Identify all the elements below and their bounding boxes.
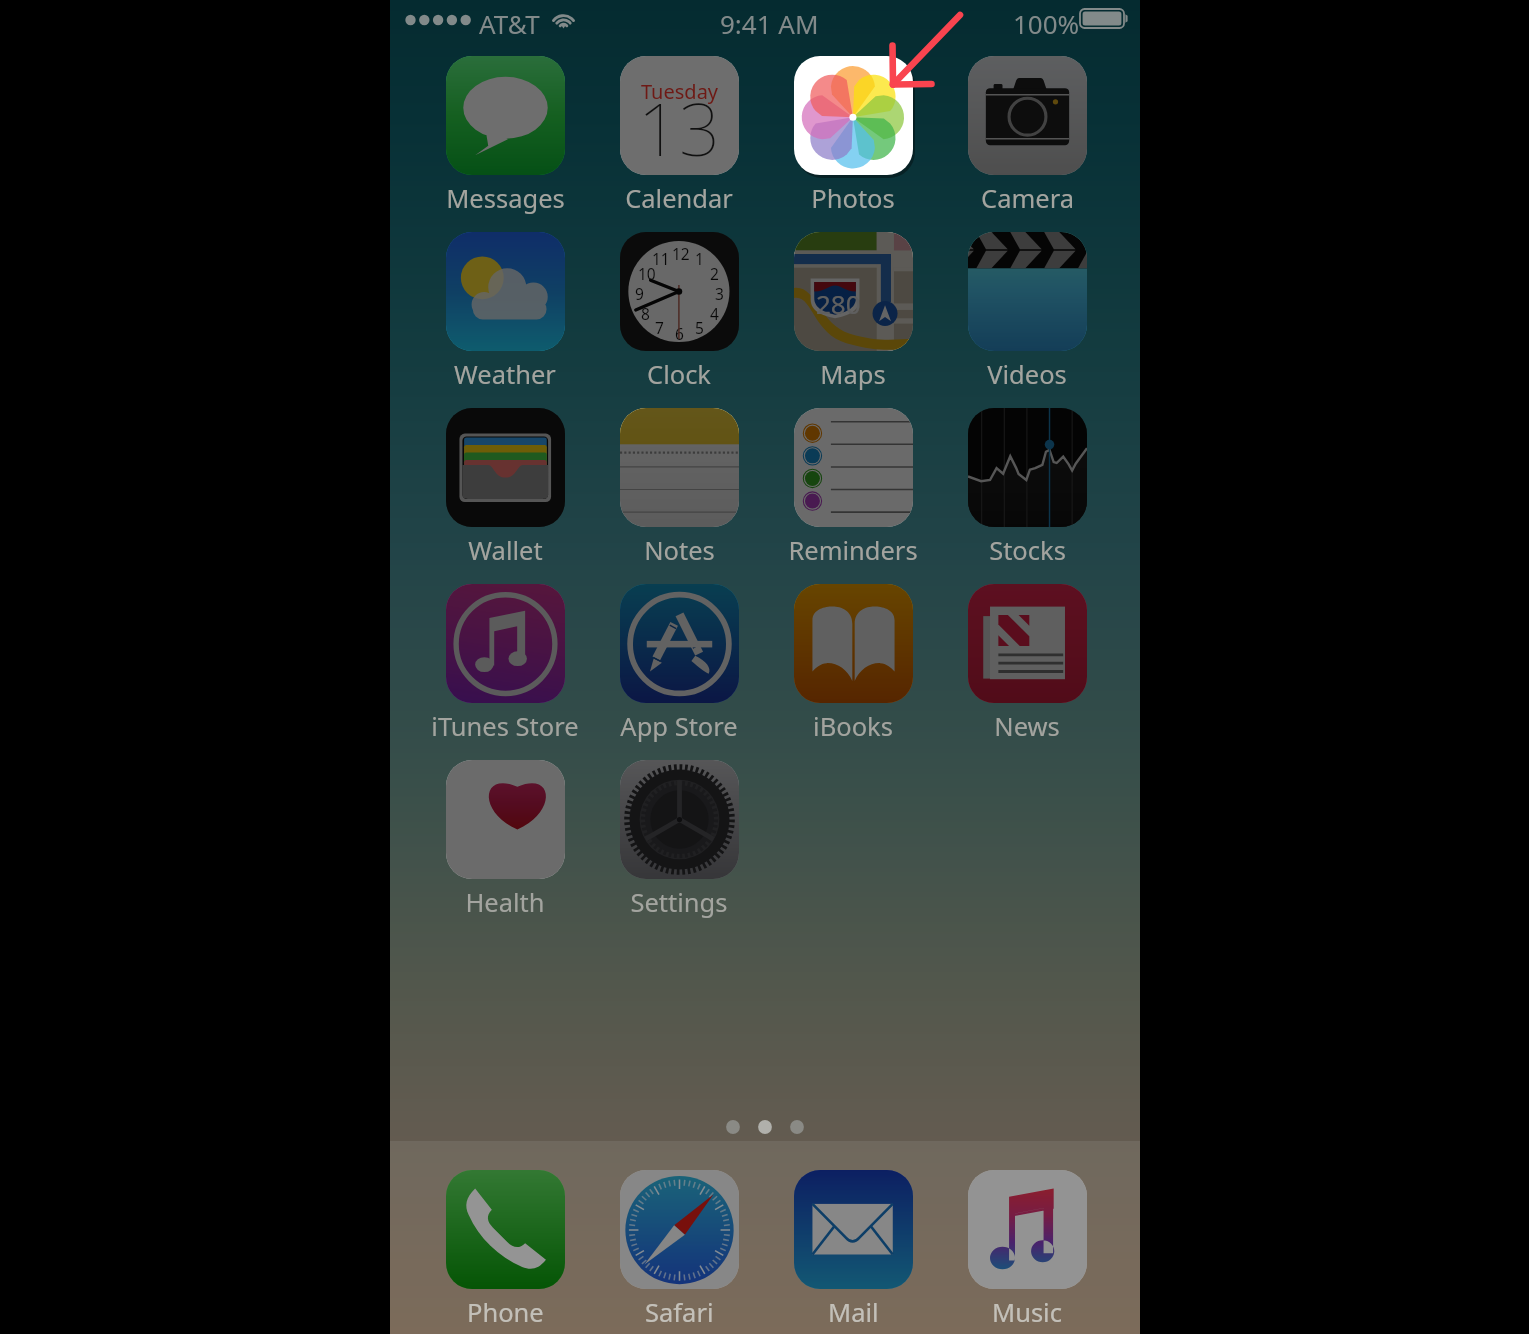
button[interactable]: Health (418, 760, 592, 920)
staticText: Settings (630, 885, 728, 920)
staticText: 8 (641, 303, 650, 324)
button[interactable]: iTunes Store (418, 584, 592, 744)
staticText: 7 (655, 317, 664, 338)
staticText: Camera (981, 181, 1074, 216)
staticText: 5 (695, 317, 704, 338)
button[interactable]: Safari (592, 1170, 766, 1330)
staticText: 9:41 AM (720, 6, 819, 41)
staticText: 10 (638, 263, 656, 284)
button[interactable]: Weather (418, 232, 592, 392)
button[interactable]: Settings (592, 760, 766, 920)
staticText: Notes (644, 533, 715, 568)
button[interactable]: Mail (766, 1170, 940, 1330)
staticText: Tuesday (641, 78, 719, 105)
button[interactable]: Tuesday (592, 56, 766, 216)
staticText: AT&T (479, 6, 540, 41)
staticText: Safari (645, 1295, 714, 1330)
staticText: 6 (675, 323, 684, 344)
button[interactable]: 1 (592, 232, 766, 392)
staticText: Music (992, 1295, 1062, 1330)
staticText: 2 (710, 263, 719, 284)
staticText: Health (465, 885, 545, 920)
staticText: iBooks (813, 709, 893, 744)
button[interactable]: Music (940, 1170, 1114, 1330)
staticText: Mail (828, 1295, 879, 1330)
staticText: 4 (710, 303, 719, 324)
button[interactable]: Videos (940, 232, 1114, 392)
staticText: Weather (454, 357, 556, 392)
staticText: 280 (816, 286, 861, 321)
staticText: 3 (715, 283, 724, 304)
staticText: Clock (647, 357, 711, 392)
staticText: Reminders (788, 533, 918, 568)
button[interactable]: Photos (766, 56, 940, 216)
button[interactable]: App Store (592, 584, 766, 744)
staticText: Messages (446, 181, 565, 216)
button[interactable]: Reminders (766, 408, 940, 568)
staticText: Calendar (625, 181, 733, 216)
button[interactable]: iBooks (766, 584, 940, 744)
button[interactable]: Phone (418, 1170, 592, 1330)
button[interactable]: Stocks (940, 408, 1114, 568)
staticText: 11 (652, 248, 670, 269)
button[interactable]: Camera (940, 56, 1114, 216)
staticText: News (994, 709, 1060, 744)
staticText: 9 (635, 283, 644, 304)
staticText: App Store (620, 709, 738, 744)
staticText: 12 (672, 243, 690, 264)
staticText: 13 (638, 79, 721, 175)
button[interactable]: News (940, 584, 1114, 744)
button[interactable]: 280 (766, 232, 940, 392)
staticText: 100% (1013, 6, 1080, 41)
button[interactable]: Messages (418, 56, 592, 216)
staticText: Stocks (989, 533, 1066, 568)
staticText: Videos (987, 357, 1067, 392)
button[interactable]: Wallet (418, 408, 592, 568)
staticText: Photos (811, 181, 895, 216)
staticText: 1 (695, 248, 704, 269)
staticText: Maps (820, 357, 886, 392)
staticText: iTunes Store (431, 709, 579, 744)
staticText: Phone (467, 1295, 544, 1330)
staticText: Wallet (468, 533, 543, 568)
button[interactable]: Notes (592, 408, 766, 568)
